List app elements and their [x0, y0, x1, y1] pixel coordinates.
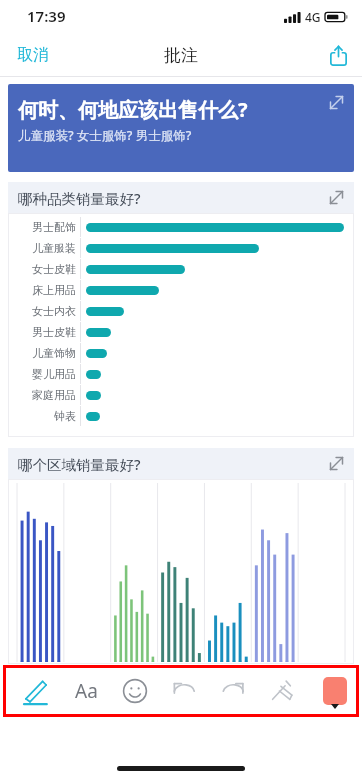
button[interactable]	[8, 479, 354, 664]
button[interactable]: Expand	[323, 89, 350, 116]
staticText: 女士皮鞋	[32, 262, 76, 276]
button[interactable]: Share	[315, 39, 362, 72]
button[interactable]: Redo	[216, 674, 250, 708]
staticText: 男士配饰	[32, 220, 76, 234]
staticText: Aa	[75, 678, 98, 704]
staticText: 婴儿用品	[32, 367, 76, 381]
button[interactable]: 取消	[0, 37, 66, 73]
staticText: 儿童饰物	[32, 346, 76, 360]
button[interactable]: Undo	[167, 674, 201, 708]
button[interactable]: 何时、何地应该出售什么?	[8, 84, 354, 172]
staticText: 儿童服装? 女士服饰? 男士服饰?	[18, 127, 192, 144]
button[interactable]: Text	[69, 672, 104, 710]
staticText: 17:39	[27, 6, 66, 26]
button[interactable]: Pen	[17, 672, 55, 710]
button[interactable]: Expand	[323, 184, 350, 211]
staticText: 钟表	[54, 409, 76, 423]
button[interactable]: Color	[323, 677, 347, 705]
staticText: 男士皮鞋	[32, 325, 76, 339]
staticText: 批注	[164, 45, 198, 66]
staticText: 床上用品	[32, 283, 76, 297]
staticText: 4G	[305, 9, 321, 25]
staticText: 哪种品类销量最好?	[18, 188, 141, 208]
button[interactable]: 男士配饰	[8, 213, 354, 437]
staticText: 家庭用品	[32, 388, 76, 402]
button[interactable]: 哪种品类销量最好?	[8, 182, 354, 213]
button[interactable]: Expand	[323, 450, 350, 477]
button[interactable]: Emoji	[118, 674, 152, 708]
button[interactable]: 哪个区域销量最好?	[8, 448, 354, 479]
staticText: 何时、何地应该出售什么?	[18, 96, 248, 123]
staticText: 女士内衣	[32, 304, 76, 318]
staticText: 取消	[17, 45, 49, 65]
button[interactable]: Erase all	[265, 674, 299, 708]
staticText: 哪个区域销量最好?	[18, 454, 141, 474]
staticText: 儿童服装	[32, 241, 76, 255]
